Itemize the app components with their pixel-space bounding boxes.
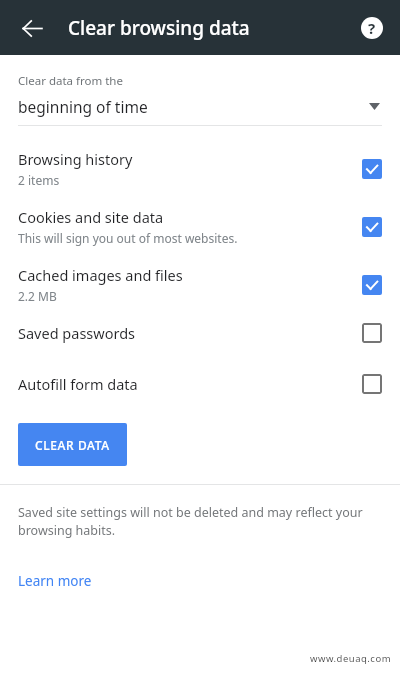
staticText: 2 items [18,172,60,188]
staticText: Cached images and files [18,265,183,285]
button[interactable]: CLEAR DATA [18,423,127,466]
button[interactable]: Clear data from the [0,73,400,126]
button[interactable]: Cached images and files [0,265,400,304]
button[interactable]: Saved passwords [0,323,400,343]
staticText: beginning of time [18,96,371,117]
staticText: CLEAR DATA [35,437,110,453]
staticText: Browsing history [18,149,133,169]
staticText: Cookies and site data [18,207,164,227]
staticText: 2.2 MB [18,288,57,304]
button[interactable]: Autofill form data [0,374,400,394]
staticText: Clear data from the [18,73,123,89]
staticText: www.deuaq.com [310,652,392,665]
button[interactable]: Help [350,6,394,50]
staticText: Saved passwords [18,323,135,343]
staticText: ? [368,18,376,38]
button[interactable]: Back [10,6,54,50]
staticText: Clear browsing data [68,15,250,41]
staticText: Learn more [18,572,92,590]
staticText: Autofill form data [18,374,138,394]
button[interactable]: Browsing history [0,149,400,188]
staticText: This will sign you out of most websites. [18,230,238,246]
staticText: Saved site settings will not be deleted … [18,504,382,539]
button[interactable]: Learn more [18,572,92,590]
button[interactable]: Cookies and site data [0,207,400,246]
